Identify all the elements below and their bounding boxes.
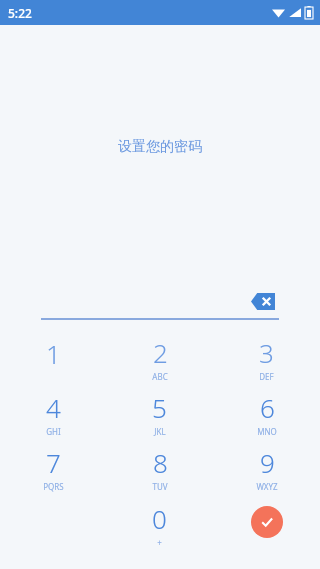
staticText: 6	[260, 390, 275, 425]
button[interactable]: 3	[213, 331, 320, 386]
button[interactable]: 9	[213, 441, 320, 496]
button[interactable]: 5	[106, 386, 213, 441]
staticText: 4	[46, 390, 61, 425]
button[interactable]: Backspace	[248, 287, 278, 315]
staticText: MNO	[257, 426, 277, 437]
staticText: 5:22	[8, 5, 32, 21]
staticText: DEF	[259, 371, 274, 382]
button[interactable]: 6	[213, 386, 320, 441]
staticText: 9	[260, 445, 275, 480]
staticText: 0	[152, 501, 167, 536]
staticText: 设置您的密码	[0, 138, 320, 156]
staticText: GHI	[46, 426, 61, 437]
staticText: 2	[153, 335, 168, 370]
button[interactable]: 4	[0, 386, 106, 441]
staticText: 3	[259, 335, 274, 370]
staticText: 7	[46, 445, 61, 480]
staticText: ABC	[152, 371, 168, 382]
staticText: PQRS	[43, 481, 64, 492]
button[interactable]: 1	[0, 331, 106, 386]
staticText: 5	[152, 390, 167, 425]
button[interactable]: 0	[106, 496, 213, 553]
staticText: 1	[46, 336, 61, 371]
staticText: JKL	[154, 426, 166, 437]
button[interactable]: Confirm	[251, 506, 283, 538]
staticText: TUV	[152, 481, 168, 492]
staticText: 8	[153, 445, 168, 480]
button[interactable]: 2	[106, 331, 213, 386]
staticText: +	[157, 537, 162, 548]
staticText: WXYZ	[256, 481, 278, 492]
button[interactable]: 8	[106, 441, 213, 496]
button[interactable]: 7	[0, 441, 106, 496]
